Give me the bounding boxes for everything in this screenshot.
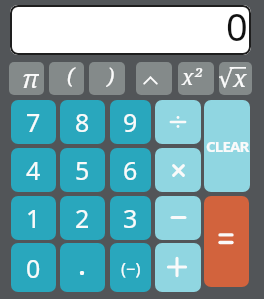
button[interactable]: 3 bbox=[110, 196, 151, 240]
staticText: ( bbox=[67, 62, 75, 91]
staticText: π bbox=[22, 62, 39, 93]
button[interactable]: 2 bbox=[60, 196, 105, 240]
button[interactable] bbox=[204, 196, 249, 287]
staticText: 0 bbox=[226, 5, 248, 50]
staticText: CLEAR bbox=[206, 136, 249, 156]
staticText: (−) bbox=[121, 257, 141, 279]
button[interactable]: 9 bbox=[110, 100, 151, 144]
staticText: 4 bbox=[26, 153, 41, 187]
button[interactable]: 8 bbox=[60, 100, 105, 144]
button[interactable]: 6 bbox=[110, 148, 151, 192]
button[interactable]: 5 bbox=[60, 148, 105, 192]
button[interactable]: x² bbox=[178, 62, 214, 95]
staticText: 6 bbox=[123, 153, 138, 187]
staticText: x² bbox=[182, 63, 202, 92]
button[interactable]: 0 bbox=[10, 5, 251, 55]
staticText: 9 bbox=[123, 105, 138, 139]
button[interactable]: π bbox=[9, 62, 44, 95]
staticText: 8 bbox=[75, 105, 90, 139]
button[interactable] bbox=[136, 62, 172, 95]
button[interactable]: ( bbox=[49, 62, 84, 95]
staticText: 1 bbox=[26, 201, 41, 235]
staticText: 5 bbox=[75, 153, 90, 187]
button[interactable]: 7 bbox=[11, 100, 56, 144]
button[interactable]: CLEAR bbox=[204, 100, 250, 192]
button[interactable]: ) bbox=[89, 62, 125, 95]
button[interactable] bbox=[155, 148, 201, 192]
button[interactable]: √x bbox=[219, 62, 252, 95]
button[interactable]: 0 bbox=[11, 243, 56, 292]
button[interactable] bbox=[155, 100, 201, 144]
button[interactable]: (−) bbox=[110, 243, 151, 292]
staticText: 2 bbox=[75, 201, 90, 235]
staticText: √x bbox=[219, 62, 247, 94]
staticText: ) bbox=[107, 62, 115, 91]
staticText: 7 bbox=[26, 105, 41, 139]
staticText: 3 bbox=[123, 201, 138, 235]
button[interactable] bbox=[155, 196, 201, 240]
button[interactable] bbox=[155, 243, 201, 292]
staticText: 0 bbox=[26, 251, 41, 285]
button[interactable]: 4 bbox=[11, 148, 56, 192]
button[interactable] bbox=[60, 243, 105, 292]
button[interactable]: 1 bbox=[11, 196, 56, 240]
